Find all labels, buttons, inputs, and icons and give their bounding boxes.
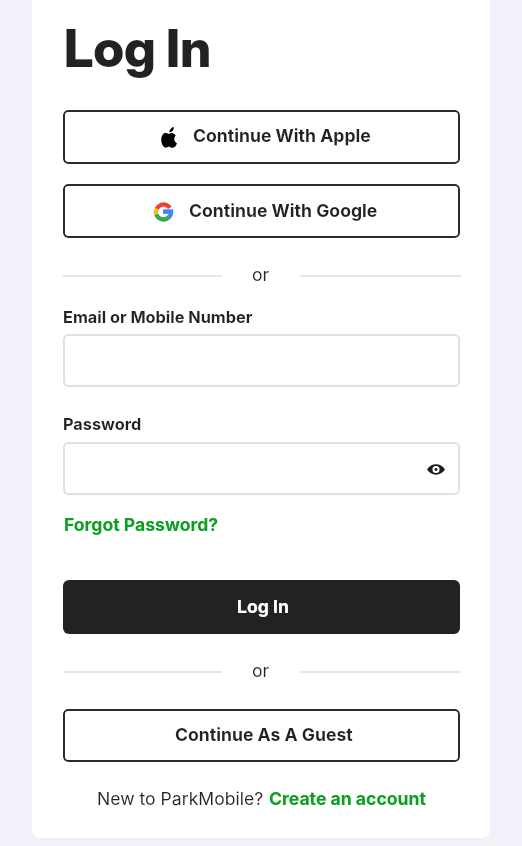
button[interactable] <box>63 184 460 238</box>
staticText: or <box>252 264 270 285</box>
button[interactable]: Show password <box>63 442 460 495</box>
staticText: Log In <box>237 596 289 617</box>
button[interactable] <box>63 110 460 164</box>
staticText: New to ParkMobile? <box>97 788 269 809</box>
button[interactable]: Show password <box>425 458 447 480</box>
button[interactable]: Create an account <box>269 788 426 809</box>
staticText: Password <box>63 414 142 434</box>
staticText: Log In <box>64 17 212 80</box>
button[interactable]: Continue With Google <box>189 200 378 221</box>
button[interactable] <box>63 334 460 387</box>
button[interactable] <box>63 580 460 634</box>
button[interactable]: Continue As A Guest <box>175 724 353 745</box>
button[interactable] <box>63 709 460 762</box>
staticText: or <box>252 660 270 681</box>
button[interactable]: Continue With Apple <box>193 125 371 146</box>
button[interactable]: Forgot Password? <box>64 514 219 535</box>
staticText: Email or Mobile Number <box>63 307 253 327</box>
